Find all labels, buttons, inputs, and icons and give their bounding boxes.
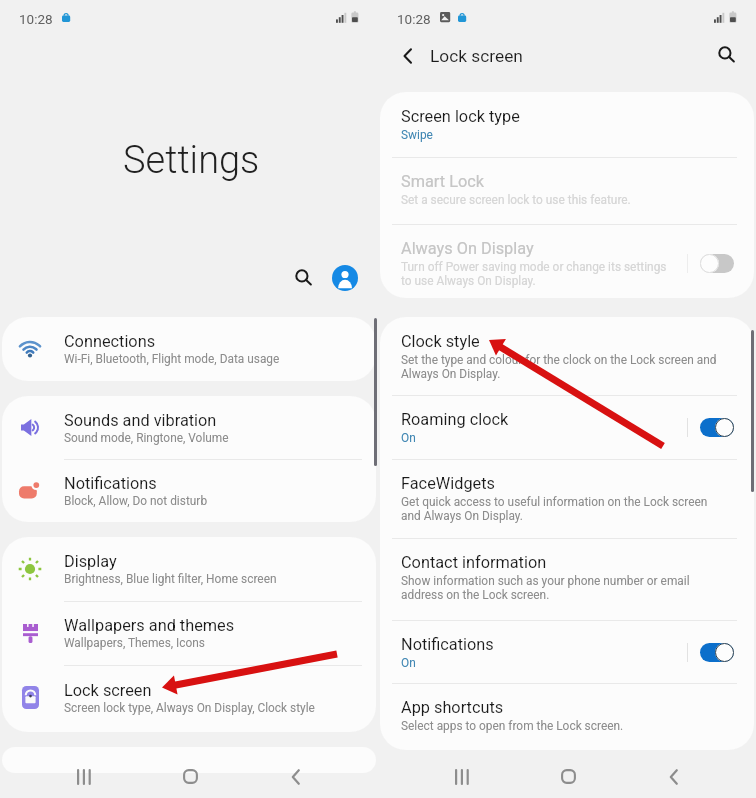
staticText: Notifications (64, 474, 157, 493)
button[interactable]: Account (332, 265, 358, 291)
staticText: Contact information (401, 553, 547, 572)
button[interactable]: App shortcuts (380, 683, 754, 747)
button[interactable]: Connections (2, 317, 376, 381)
button[interactable]: Always On Display (380, 224, 754, 298)
button[interactable]: Notifications switch (700, 643, 734, 662)
staticText: Clock style (401, 332, 480, 351)
staticText: Settings (123, 138, 260, 183)
staticText: Get quick access to useful information o… (401, 495, 708, 509)
button[interactable]: Recents (439, 755, 485, 798)
staticText: Always On Display (401, 239, 534, 258)
staticText: FaceWidgets (401, 474, 495, 493)
staticText: Turn off Power saving mode or change its… (401, 260, 667, 274)
button[interactable]: Home (545, 755, 591, 798)
staticText: Brightness, Blue light filter, Home scre… (64, 572, 277, 586)
staticText: Screen lock type (401, 107, 520, 126)
button[interactable]: Lock screen (2, 665, 376, 730)
staticText: Screen lock type, Always On Display, Clo… (64, 701, 315, 715)
button[interactable]: Back (650, 755, 696, 798)
staticText: and Always On Display. (401, 509, 523, 523)
button[interactable]: Navigate up (385, 34, 429, 78)
staticText: Lock screen (430, 46, 523, 66)
staticText: Smart Lock (401, 172, 484, 191)
staticText: On (401, 656, 416, 670)
button[interactable]: Back (272, 755, 318, 798)
staticText: to use Always On Display. (401, 274, 536, 288)
staticText: 10:28 (19, 11, 53, 27)
staticText: Set the type and colour for the clock on… (401, 353, 717, 367)
button[interactable]: Screen lock type (380, 92, 754, 156)
staticText: App shortcuts (401, 698, 504, 717)
staticText: Set a secure screen lock to use this fea… (401, 193, 631, 207)
staticText: Wi-Fi, Bluetooth, Flight mode, Data usag… (64, 352, 280, 366)
button[interactable]: Search (704, 32, 748, 76)
button[interactable]: Recents (61, 755, 107, 798)
button[interactable]: Roaming clock (380, 395, 754, 459)
staticText: Wallpapers, Themes, Icons (64, 636, 206, 650)
button[interactable]: Clock style (380, 317, 754, 396)
button[interactable]: Search (283, 257, 323, 297)
staticText: Sound mode, Ringtone, Volume (64, 431, 229, 445)
staticText: Roaming clock (401, 410, 509, 429)
staticText: Lock screen (64, 681, 152, 700)
button[interactable]: Display (2, 537, 376, 601)
button[interactable]: Roaming clock switch (700, 418, 734, 437)
staticText: Display (64, 552, 117, 571)
staticText: Always On Display. (401, 367, 501, 381)
staticText: Wallpapers and themes (64, 616, 235, 635)
button[interactable]: Home (167, 755, 213, 798)
staticText: 10:28 (397, 11, 431, 27)
staticText: Select apps to open from the Lock screen… (401, 719, 624, 733)
staticText: Show information such as your phone numb… (401, 574, 690, 588)
button[interactable]: Wallpapers and themes (2, 601, 376, 665)
button[interactable]: Contact information (380, 538, 754, 617)
button[interactable]: Smart Lock (380, 157, 754, 221)
staticText: address on the Lock screen. (401, 588, 550, 602)
button[interactable]: FaceWidgets (380, 459, 754, 538)
staticText: Block, Allow, Do not disturb (64, 494, 208, 508)
staticText: Swipe (401, 128, 433, 142)
staticText: Notifications (401, 635, 494, 654)
staticText: On (401, 431, 416, 445)
staticText: Connections (64, 332, 156, 351)
button[interactable]: Sounds and vibration (2, 396, 376, 459)
staticText: Sounds and vibration (64, 411, 217, 430)
button[interactable]: Always On Display switch (700, 254, 734, 273)
button[interactable]: Notifications (380, 620, 754, 684)
button[interactable]: Notifications (2, 459, 376, 522)
